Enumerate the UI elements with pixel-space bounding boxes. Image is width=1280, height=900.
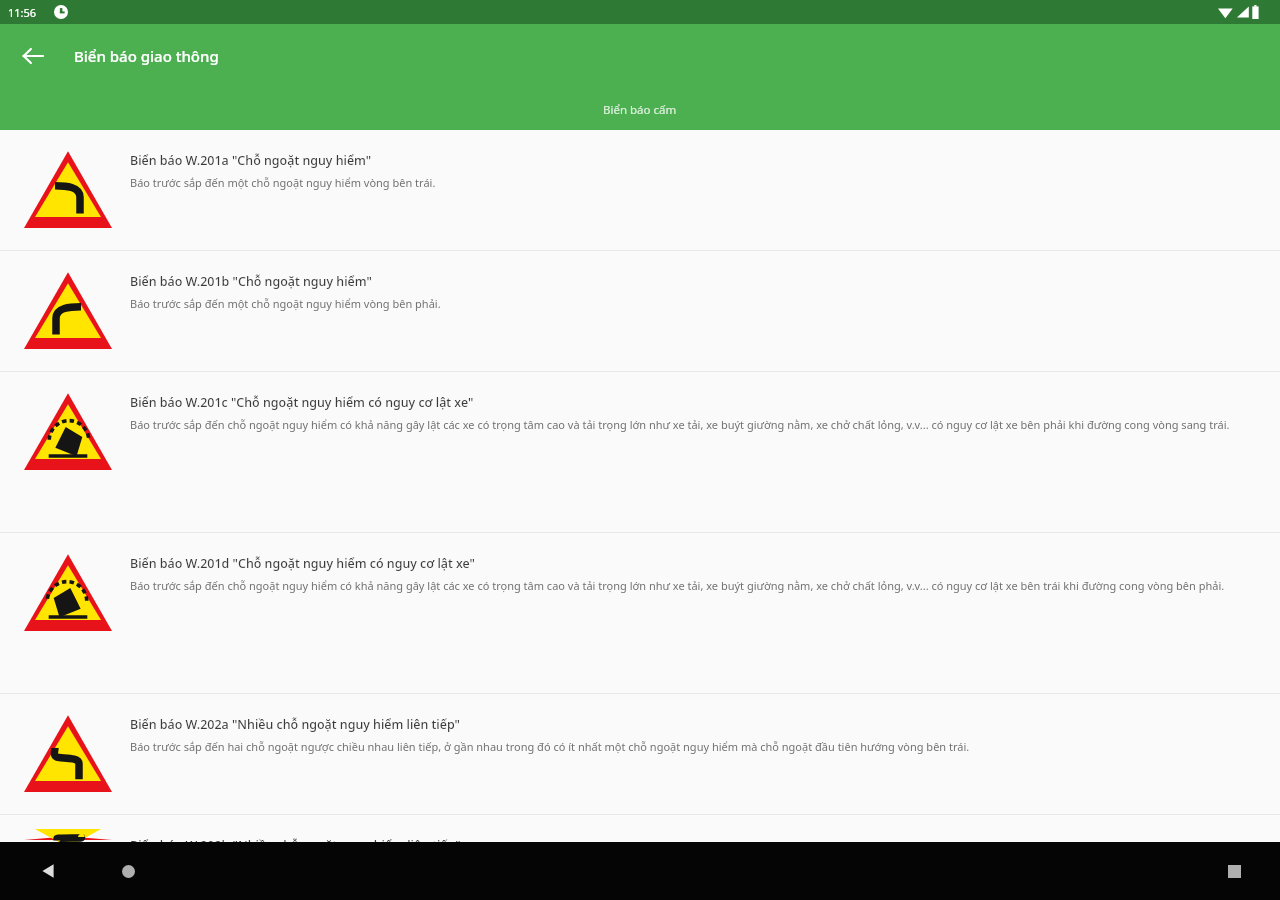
staticText: Biển báo W.201d "Chỗ ngoặt nguy hiểm có … — [130, 555, 475, 572]
staticText: Báo trước sắp đến hai chỗ ngoặt ngược ch… — [130, 739, 970, 754]
button[interactable]: Biển báo W.201d "Chỗ ngoặt nguy hiểm có … — [0, 533, 1280, 693]
staticText: Biển báo W.201c "Chỗ ngoặt nguy hiểm có … — [130, 394, 474, 411]
button[interactable]: Biển báo W.201c "Chỗ ngoặt nguy hiểm có … — [0, 372, 1280, 532]
button[interactable]: Recents — [1214, 851, 1254, 891]
staticText: Báo trước sắp đến một chỗ ngoặt nguy hiể… — [130, 175, 436, 190]
staticText: Biển báo W.201b "Chỗ ngoặt nguy hiểm" — [130, 273, 372, 290]
staticText: Biển báo W.201a "Chỗ ngoặt nguy hiểm" — [130, 152, 372, 169]
button[interactable]: Biển báo W.201a "Chỗ ngoặt nguy hiểm" — [0, 130, 1280, 250]
staticText: Báo trước sắp đến chỗ ngoặt nguy hiểm có… — [130, 417, 1230, 432]
button[interactable]: Biển báo W.202a "Nhiều chỗ ngoặt nguy hi… — [0, 694, 1280, 814]
staticText: Biển báo W.202a "Nhiều chỗ ngoặt nguy hi… — [130, 716, 460, 733]
button[interactable]: Biển báo W.202b "Nhiều chỗ ngoặt nguy hi… — [0, 815, 1280, 842]
button[interactable]: Back — [28, 851, 68, 891]
button[interactable]: Biển báo W.201b "Chỗ ngoặt nguy hiểm" — [0, 251, 1280, 371]
staticText: Biển báo W.202b "Nhiều chỗ ngoặt nguy hi… — [130, 837, 461, 842]
staticText: 11:56 — [8, 5, 37, 20]
button[interactable]: Biển báo cấm — [0, 93, 1280, 130]
button[interactable]: Home — [108, 851, 148, 891]
button[interactable]: Back — [10, 34, 54, 78]
staticText: Báo trước sắp đến một chỗ ngoặt nguy hiể… — [130, 296, 441, 311]
staticText: Biển báo giao thông — [74, 46, 219, 66]
staticText: Báo trước sắp đến chỗ ngoặt nguy hiểm có… — [130, 578, 1225, 593]
staticText: Biển báo cấm — [603, 102, 677, 118]
